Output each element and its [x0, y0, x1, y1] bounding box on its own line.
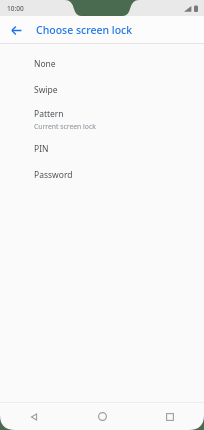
button[interactable]: Swipe [0, 77, 204, 103]
button[interactable]: Password [0, 162, 204, 188]
staticText: Choose screen lock [36, 23, 133, 37]
button[interactable]: Home [68, 403, 136, 430]
staticText: Password [34, 169, 73, 181]
button[interactable]: Back [6, 20, 26, 40]
button[interactable]: None [0, 51, 204, 77]
staticText: None [34, 58, 56, 70]
staticText: Current screen lock [34, 122, 96, 131]
button[interactable]: Pattern [0, 103, 204, 136]
staticText: Pattern [34, 108, 64, 120]
button[interactable]: Back [0, 403, 68, 430]
staticText: Swipe [34, 84, 58, 96]
button[interactable]: Recent apps [136, 403, 204, 430]
staticText: PIN [34, 143, 49, 155]
button[interactable]: PIN [0, 136, 204, 162]
staticText: 10:00 [7, 4, 24, 13]
